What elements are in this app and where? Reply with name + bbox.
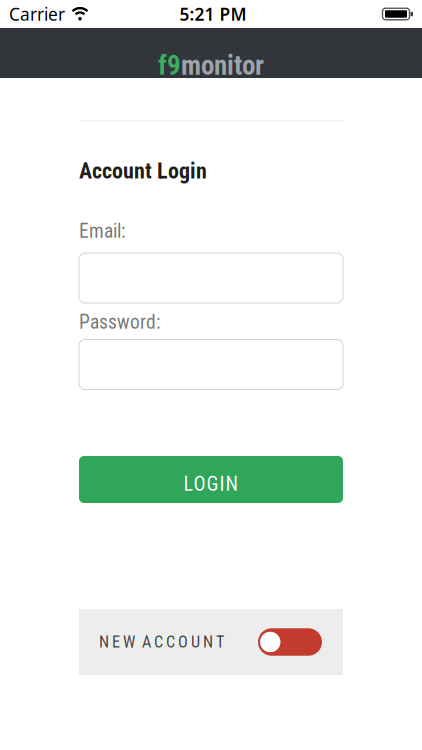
staticText: Carrier — [9, 2, 65, 25]
staticText: Account Login — [79, 158, 207, 184]
staticText: 5:21 PM — [179, 2, 246, 25]
staticText: Password: — [79, 311, 161, 333]
staticText: N E W A C C O U N T — [99, 632, 224, 652]
staticText: Email: — [79, 220, 126, 242]
staticText: LOGIN — [183, 472, 238, 496]
button[interactable]: LOGIN — [79, 456, 343, 503]
button[interactable]: N E W A C C O U N T — [79, 609, 343, 675]
button[interactable]: Password — [79, 339, 343, 389]
staticText: monitor — [181, 50, 264, 81]
staticText: f9 — [158, 50, 181, 81]
button[interactable]: Email — [79, 253, 343, 303]
